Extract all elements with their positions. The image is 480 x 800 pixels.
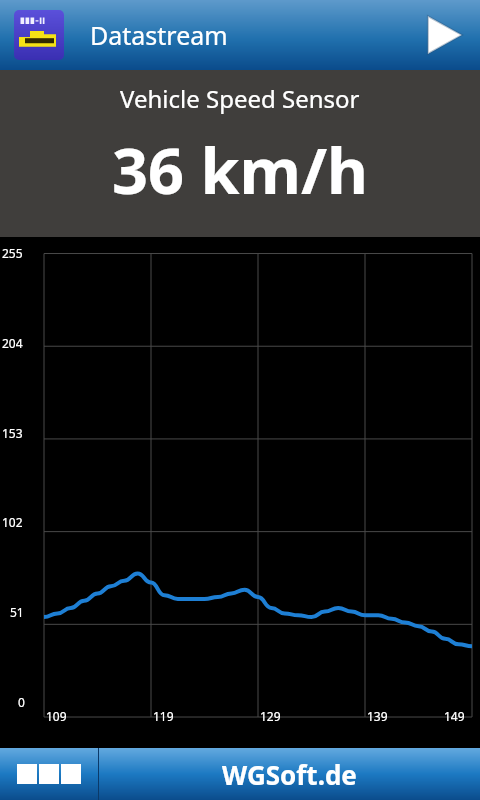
staticText: Datastream [90, 18, 228, 52]
staticText: 139 [367, 708, 388, 724]
staticText: 51 [10, 604, 24, 620]
staticText: WGSoft.de [222, 757, 357, 792]
staticText: 204 [2, 335, 23, 351]
staticText: 129 [260, 708, 281, 724]
staticText: Vehicle Speed Sensor [120, 82, 360, 115]
staticText: 119 [153, 708, 174, 724]
button[interactable]: WGSoft.de [99, 748, 480, 800]
staticText: 109 [46, 708, 67, 724]
button[interactable]: Play [416, 8, 470, 62]
button[interactable]: OBD-II Check [14, 10, 64, 60]
staticText: 255 [2, 245, 23, 261]
button[interactable]: Menu [0, 748, 98, 800]
staticText: 149 [444, 708, 465, 724]
staticText: 36 km/h [112, 127, 369, 213]
staticText: 102 [2, 514, 23, 530]
staticText: 0 [18, 694, 25, 710]
staticText: 153 [2, 425, 23, 441]
